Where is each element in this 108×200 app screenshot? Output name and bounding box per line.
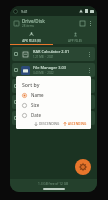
button[interactable]: Name xyxy=(22,92,87,98)
staticText: Sort by xyxy=(22,81,40,88)
staticText: File Manager 3.03 xyxy=(33,65,66,70)
button[interactable]: Size xyxy=(22,102,87,108)
button[interactable]: APP FILES xyxy=(53,30,97,44)
button[interactable]: Storage xyxy=(13,20,20,27)
button[interactable]: ASCENDING xyxy=(63,122,87,126)
staticText: 1.3 GB free of 12 GB xyxy=(38,182,69,186)
button[interactable]: Item options xyxy=(86,83,93,90)
staticText: Name xyxy=(31,92,44,98)
button[interactable]: DESCENDING xyxy=(34,122,60,126)
button[interactable]: Item options xyxy=(86,67,93,74)
staticText: APP FILES xyxy=(68,39,82,43)
staticText: 4.11 MB · 2020 xyxy=(33,87,54,91)
button[interactable]: Item options xyxy=(86,51,93,58)
staticText: RAR Calculator 2.01 xyxy=(33,49,70,54)
staticText: 28 items xyxy=(22,24,35,28)
staticText: DESCENDING xyxy=(39,122,60,126)
staticText: ObjectUtilities 1.01 xyxy=(33,81,69,86)
button[interactable]: More options xyxy=(86,19,94,27)
button[interactable]: RAR Calculator 2.01 xyxy=(12,47,95,61)
button[interactable]: To-Do List 4.08 xyxy=(12,95,95,109)
staticText: 2.05 MB · 2023 xyxy=(33,103,54,107)
button[interactable]: Voice Recorder 2.01 xyxy=(12,111,95,125)
button[interactable]: Date xyxy=(22,112,87,118)
button[interactable]: Item options xyxy=(86,99,93,106)
staticText: Date xyxy=(31,112,41,118)
button[interactable]: Add xyxy=(75,159,91,175)
staticText: 1.21 MB · 2021 xyxy=(33,55,54,59)
staticText: Size xyxy=(31,102,40,108)
button[interactable]: File Manager 3.03 xyxy=(12,63,95,77)
staticText: Voice Recorder 2.01 xyxy=(33,113,70,118)
button[interactable]: Item options xyxy=(86,115,93,122)
staticText: APK FILES (8) xyxy=(22,39,41,43)
button[interactable]: APK FILES (8) xyxy=(10,30,53,44)
staticText: 9:41 xyxy=(21,9,28,14)
staticText: ASCENDING xyxy=(68,122,87,126)
staticText: 3.40 MB · 2022 xyxy=(33,71,54,75)
staticText: Drive/Disk xyxy=(22,18,45,24)
button[interactable]: Select xyxy=(78,19,86,27)
button[interactable]: ObjectUtilities 1.01 xyxy=(12,79,95,93)
staticText: 7.90 MB · 2021 xyxy=(33,119,54,123)
